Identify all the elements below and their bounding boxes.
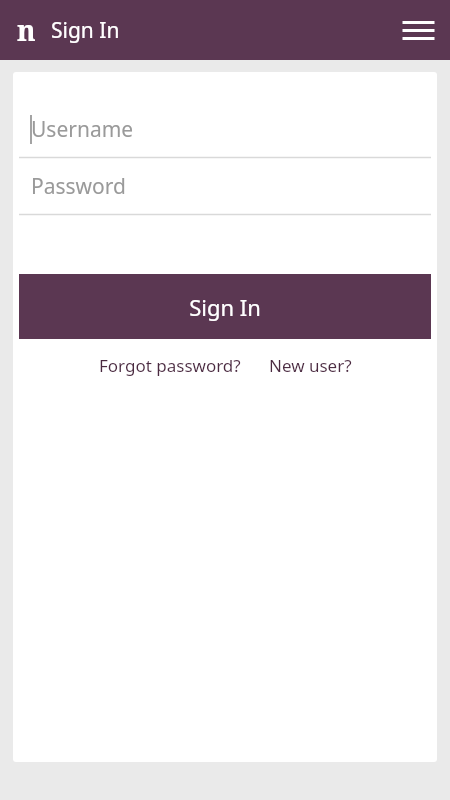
staticText: n <box>17 11 36 49</box>
staticText: Forgot password? <box>99 354 241 377</box>
button[interactable]: New user? <box>266 351 355 380</box>
staticText: Sign In <box>189 292 261 322</box>
staticText: Username <box>31 115 134 144</box>
staticText: Password <box>31 172 126 201</box>
button[interactable]: Username <box>19 101 431 158</box>
button[interactable]: Menu <box>394 6 442 54</box>
staticText: Sign In <box>51 16 120 45</box>
button[interactable]: Sign In <box>19 274 431 339</box>
staticText: New user? <box>269 354 352 377</box>
button[interactable]: Password <box>19 158 431 215</box>
button[interactable]: Forgot password? <box>96 351 244 380</box>
